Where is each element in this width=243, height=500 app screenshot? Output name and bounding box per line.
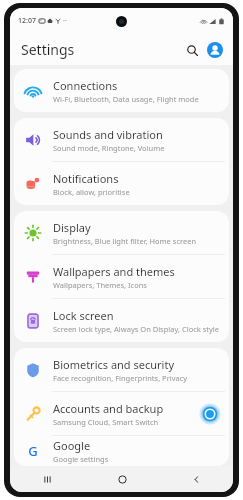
button[interactable]: Accounts and backup	[14, 392, 229, 435]
staticText: Google settings	[53, 454, 109, 464]
staticText: Google	[53, 438, 91, 453]
staticText: Brightness, Blue light filter, Home scre…	[53, 236, 197, 246]
staticText: Sounds and vibration	[53, 127, 163, 142]
staticText: Wallpapers and themes	[53, 264, 175, 279]
staticText: Wallpapers, Themes, Icons	[53, 280, 147, 290]
staticText: ··	[63, 16, 67, 26]
button[interactable]: Recents	[10, 466, 85, 492]
button[interactable]: Search	[182, 40, 202, 60]
staticText: Settings	[21, 40, 75, 59]
staticText: Accounts and backup	[53, 401, 164, 416]
button[interactable]: Notifications	[14, 162, 229, 205]
button[interactable]: Back	[159, 466, 233, 492]
staticText: Connections	[53, 78, 118, 93]
staticText: Wi-Fi, Bluetooth, Data usage, Flight mod…	[53, 94, 199, 104]
button[interactable]: Account	[205, 40, 225, 60]
button[interactable]: Home	[85, 466, 159, 492]
button[interactable]: Lock screen	[14, 299, 229, 342]
button[interactable]: G	[14, 436, 229, 466]
staticText: G	[28, 442, 38, 460]
staticText: Display	[53, 220, 91, 235]
button[interactable]: Display	[14, 211, 229, 254]
staticText: Block, allow, prioritise	[53, 187, 130, 197]
staticText: 12:07	[18, 16, 36, 26]
staticText: Face recognition, Fingerprints, Privacy	[53, 373, 188, 383]
button[interactable]: Biometrics and security	[14, 348, 229, 391]
staticText: Samsung Cloud, Smart Switch	[53, 417, 159, 427]
staticText: Screen lock type, Always On Display, Clo…	[53, 324, 220, 334]
staticText: Sound mode, Ringtone, Volume	[53, 143, 165, 153]
button[interactable]: Connections	[14, 69, 229, 112]
staticText: Lock screen	[53, 308, 114, 323]
button[interactable]: Sounds and vibration	[14, 118, 229, 161]
staticText: Biometrics and security	[53, 357, 174, 372]
staticText: Notifications	[53, 171, 119, 186]
button[interactable]: Wallpapers and themes	[14, 255, 229, 298]
